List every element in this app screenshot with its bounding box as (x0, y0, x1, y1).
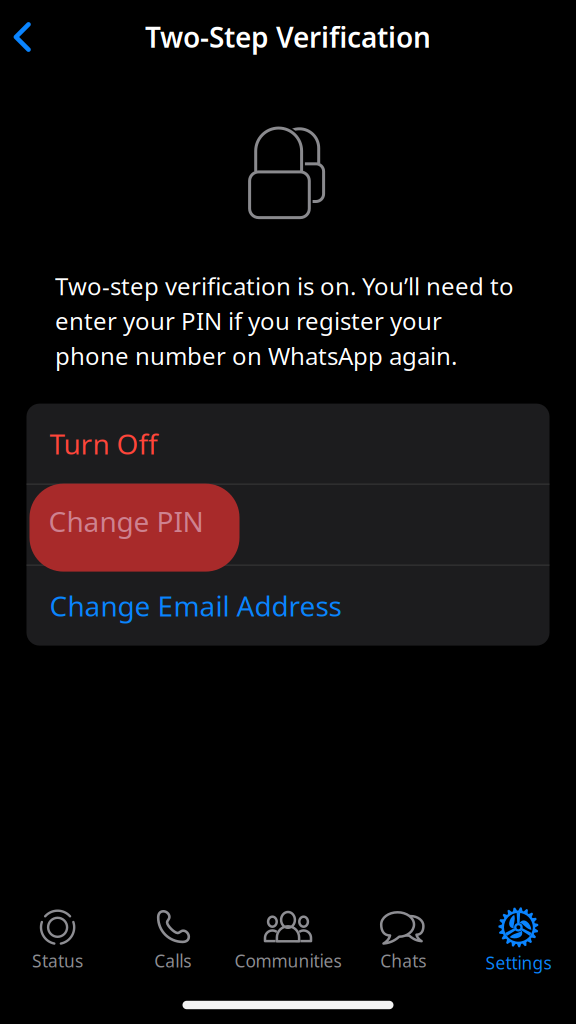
button[interactable]: Status (0, 909, 115, 972)
staticText: Change Email Address (49, 587, 341, 624)
button[interactable]: Communities (230, 909, 346, 972)
staticText: Chats (380, 949, 426, 972)
staticText: Change PIN (48, 503, 203, 540)
button[interactable]: Change Email Address (26, 566, 549, 646)
staticText: Settings (485, 951, 551, 974)
staticText: Status (32, 949, 83, 972)
staticText: Change PIN (49, 506, 204, 543)
staticText: Two-Step Verification (145, 18, 431, 56)
button[interactable]: Settings (461, 907, 576, 974)
button[interactable]: Turn Off (26, 404, 549, 484)
staticText: Communities (234, 949, 341, 972)
staticText: Two-step verification is on. You’ll need… (55, 270, 514, 372)
button[interactable]: Change PIN (26, 485, 549, 565)
button[interactable]: Calls (115, 909, 230, 972)
button[interactable]: Chats (346, 909, 461, 972)
staticText: Calls (154, 949, 191, 972)
staticText: Turn Off (49, 425, 157, 462)
button[interactable]: Back (0, 9, 45, 65)
